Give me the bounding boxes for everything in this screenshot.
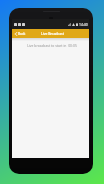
staticText: Back <box>18 32 26 36</box>
staticText: 14:40 <box>79 22 88 27</box>
button[interactable]: Back <box>12 31 29 37</box>
staticText: Live broadcast to start in 00:05 <box>27 43 77 48</box>
staticText: Live Broadcast <box>41 31 64 35</box>
other: Back <box>15 32 17 36</box>
